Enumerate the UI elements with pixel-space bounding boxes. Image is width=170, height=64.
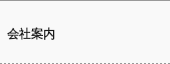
staticText: 会社案内	[7, 26, 55, 41]
button[interactable]: 会社案内	[0, 0, 170, 64]
